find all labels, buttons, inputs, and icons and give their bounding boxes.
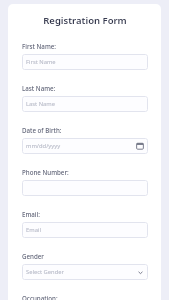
button[interactable]: mm/dd/yyyy <box>22 138 148 154</box>
button[interactable]: Pick date <box>136 142 144 150</box>
staticText: First Name: <box>22 42 56 50</box>
button[interactable]: Open gender dropdown <box>137 269 144 276</box>
staticText: Email <box>26 226 41 234</box>
button[interactable] <box>22 180 148 196</box>
button[interactable]: Last Name <box>22 96 148 112</box>
staticText: Last Name: <box>22 84 56 92</box>
staticText: Select Gender <box>26 268 64 276</box>
staticText: Date of Birth: <box>22 126 62 134</box>
button[interactable]: Email <box>22 222 148 238</box>
staticText: Last Name <box>26 100 56 108</box>
staticText: Registration Form <box>22 14 148 27</box>
staticText: mm/dd/yyyy <box>26 142 61 150</box>
staticText: Email: <box>22 210 40 218</box>
staticText: Gender <box>22 252 44 260</box>
button[interactable]: Select Gender <box>22 264 148 280</box>
staticText: First Name <box>26 58 56 66</box>
staticText: Phone Number: <box>22 168 69 176</box>
button[interactable]: First Name <box>22 54 148 70</box>
staticText: Occupation: <box>22 294 58 300</box>
